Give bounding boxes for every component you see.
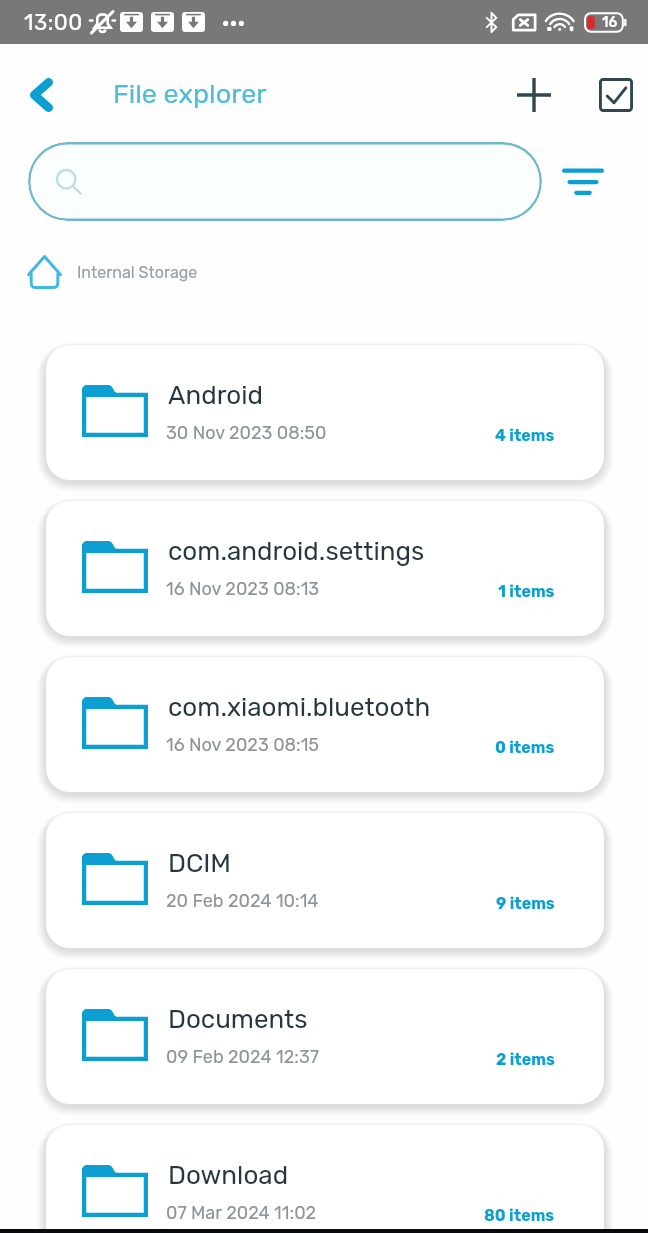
button[interactable]: Search [28,142,542,221]
button[interactable]: Internal Storage [0,245,648,299]
button[interactable]: Add [508,69,560,121]
button[interactable]: Back [17,71,65,119]
button[interactable]: DCIM [46,813,604,948]
staticText: com.xiaomi.bluetooth [168,692,431,723]
staticText: 9 items [496,894,555,913]
button[interactable]: Download [46,1125,604,1233]
staticText: com.android.settings [168,536,425,567]
staticText: 07 Mar 2024 11:02 [166,1202,317,1223]
staticText: 16 [602,14,618,31]
button[interactable]: com.android.settings [46,501,604,636]
button[interactable]: Select all [591,70,641,120]
staticText: 2 items [496,1050,555,1069]
button[interactable]: Documents [46,969,604,1104]
staticText: 16 Nov 2023 08:13 [166,578,320,599]
button[interactable]: Filter [554,152,612,210]
staticText: 20 Feb 2024 10:14 [166,890,319,911]
staticText: File explorer [113,78,267,110]
staticText: 13:00 [24,9,83,35]
staticText: DCIM [168,848,231,879]
staticText: Android [168,380,263,411]
staticText: Download [168,1160,289,1191]
staticText: 30 Nov 2023 08:50 [166,422,327,443]
staticText: 1 items [498,582,555,601]
button[interactable]: com.xiaomi.bluetooth [46,657,604,792]
staticText: 09 Feb 2024 12:37 [166,1046,319,1067]
staticText: 0 items [495,738,555,757]
staticText: 80 items [484,1206,555,1225]
staticText: 16 Nov 2023 08:15 [166,734,320,755]
staticText: Documents [168,1004,308,1035]
staticText: 4 items [495,426,555,445]
button[interactable]: Android [46,345,604,480]
staticText: Internal Storage [77,263,198,282]
